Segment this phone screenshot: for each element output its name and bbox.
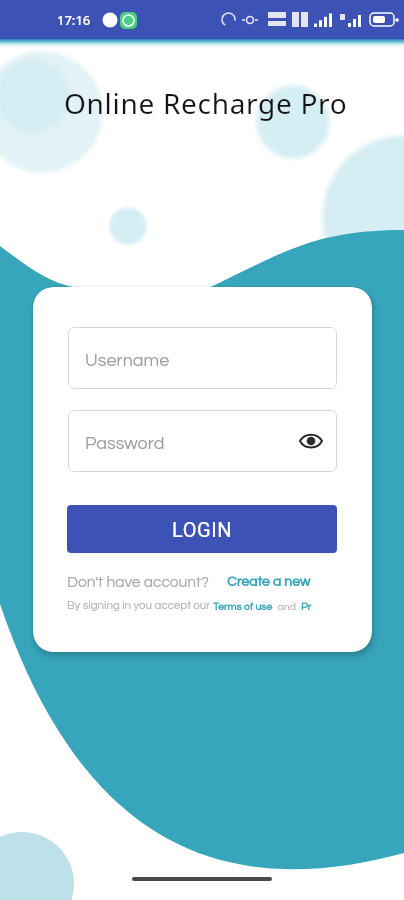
button[interactable]: Pr xyxy=(301,601,312,612)
staticText: Password xyxy=(85,434,165,453)
staticText: By signing in you accept our xyxy=(67,600,213,612)
button[interactable]: Create a new xyxy=(227,575,311,589)
staticText: Online Recharge Pro xyxy=(64,84,348,122)
staticText: Create a new xyxy=(227,575,311,589)
staticText: 17:16 xyxy=(57,11,91,29)
staticText: Username xyxy=(85,351,170,370)
button[interactable]: Username xyxy=(68,327,337,389)
button[interactable]: Password xyxy=(68,410,337,472)
staticText: and xyxy=(273,601,301,612)
button[interactable]: Show password xyxy=(297,427,325,455)
staticText: LOGIN xyxy=(172,518,233,541)
button[interactable]: Terms of use xyxy=(213,601,273,612)
button[interactable]: LOGIN xyxy=(67,505,337,553)
staticText: Don't have account? xyxy=(67,574,209,590)
